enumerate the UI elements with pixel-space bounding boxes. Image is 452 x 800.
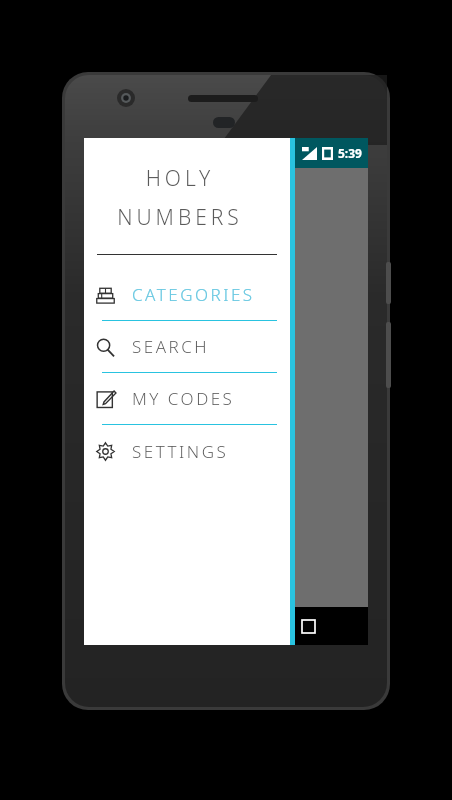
staticText: MY CODES bbox=[132, 387, 235, 410]
button[interactable]: SEARCH bbox=[84, 321, 290, 373]
staticText: SETTINGS bbox=[132, 440, 229, 463]
staticText: TH bbox=[86, 418, 114, 448]
staticText: NUMBERS bbox=[84, 203, 276, 232]
button[interactable]: Recent apps bbox=[286, 607, 330, 645]
button[interactable]: MY CODES bbox=[84, 373, 290, 425]
button[interactable]: CATEGORIES bbox=[84, 269, 290, 321]
staticText: HOLY bbox=[84, 164, 276, 193]
button[interactable]: SETTINGS bbox=[84, 425, 290, 477]
staticText: 5:39 bbox=[338, 145, 362, 161]
staticText: SEARCH bbox=[132, 335, 210, 358]
staticText: CATEGORIES bbox=[132, 283, 255, 306]
